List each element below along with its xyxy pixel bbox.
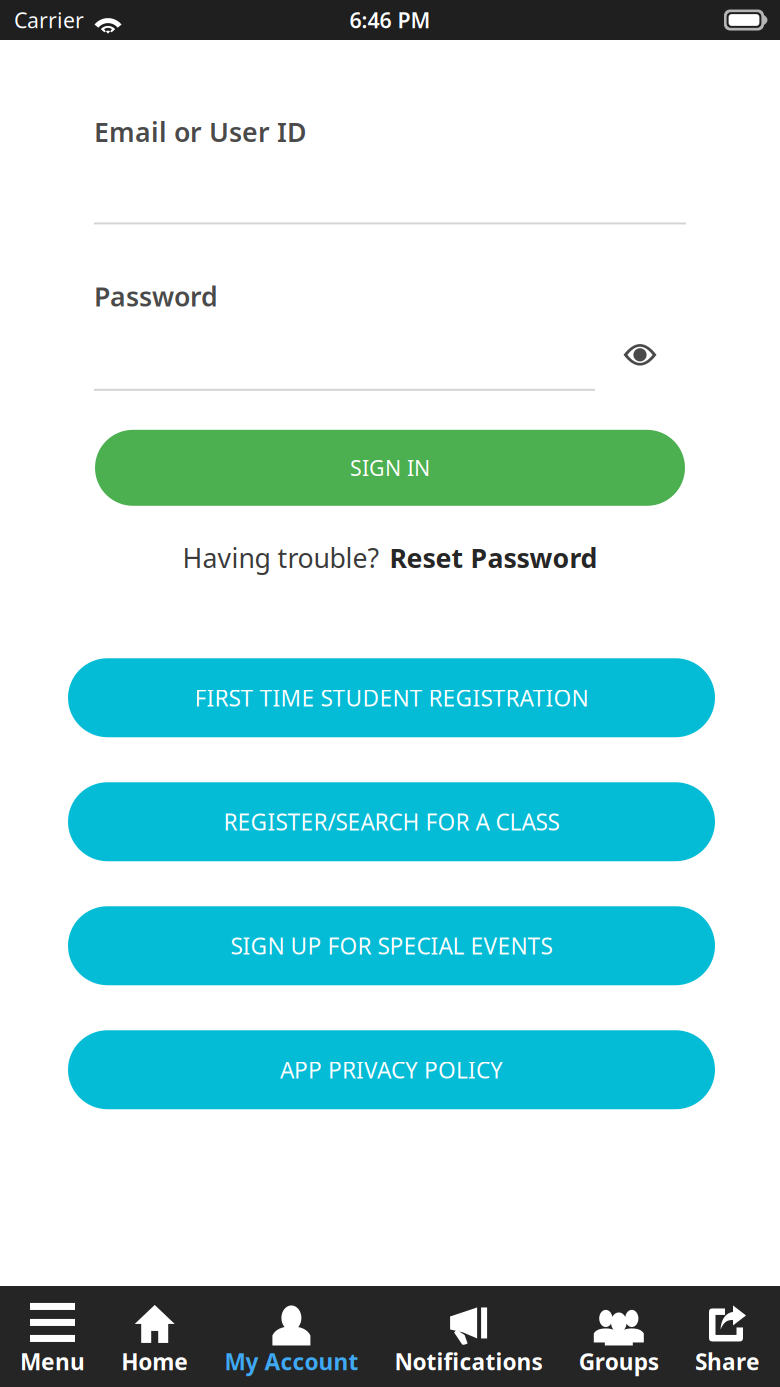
button[interactable]: REGISTER/SEARCH FOR A CLASS [68, 782, 715, 861]
staticText: Notifications [395, 1346, 543, 1376]
staticText: Having trouble? [182, 540, 379, 575]
staticText: 6:46 PM [349, 6, 430, 34]
button[interactable]: Share [695, 1282, 760, 1387]
button[interactable]: Having trouble? [182, 534, 597, 581]
button[interactable]: My Account [224, 1282, 358, 1387]
staticText: REGISTER/SEARCH FOR A CLASS [223, 807, 559, 837]
staticText: Groups [579, 1346, 659, 1376]
button[interactable]: APP PRIVACY POLICY [68, 1030, 715, 1109]
button[interactable]: Home [121, 1282, 188, 1387]
button[interactable]: SIGN IN [95, 430, 685, 506]
staticText: Share [695, 1346, 760, 1376]
button[interactable]: Menu [20, 1282, 85, 1387]
button[interactable]: Notifications [395, 1282, 543, 1387]
staticText: Home [121, 1346, 188, 1376]
staticText: SIGN IN [350, 454, 430, 482]
staticText: Password [94, 278, 218, 314]
staticText: SIGN UP FOR SPECIAL EVENTS [230, 931, 552, 961]
button[interactable]: Groups [579, 1282, 659, 1387]
button[interactable]: Show password [611, 331, 669, 379]
staticText: Email or User ID [94, 114, 307, 149]
button[interactable]: SIGN UP FOR SPECIAL EVENTS [68, 906, 715, 985]
staticText: Reset Password [389, 540, 597, 575]
staticText: Menu [20, 1346, 85, 1376]
staticText: My Account [224, 1346, 358, 1376]
staticText: APP PRIVACY POLICY [280, 1055, 503, 1085]
staticText: Carrier [14, 6, 84, 34]
button[interactable]: FIRST TIME STUDENT REGISTRATION [68, 658, 715, 737]
staticText: FIRST TIME STUDENT REGISTRATION [194, 683, 588, 713]
